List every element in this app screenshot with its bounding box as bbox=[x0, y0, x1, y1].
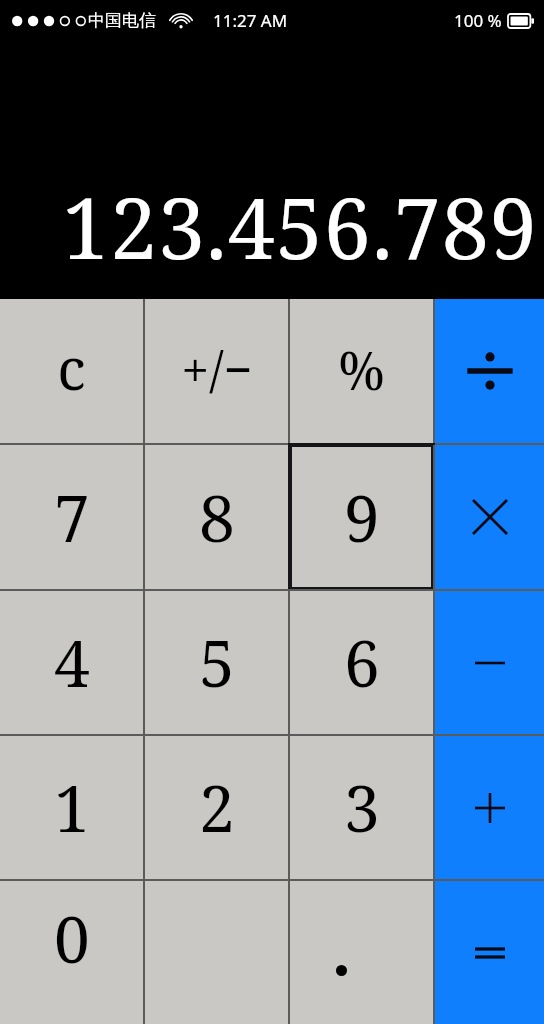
button[interactable]: 6 bbox=[290, 591, 433, 734]
staticText: +/− bbox=[181, 335, 253, 403]
staticText: 2 bbox=[199, 764, 235, 851]
button[interactable]: 7 bbox=[0, 445, 143, 589]
button[interactable]: Add bbox=[435, 736, 544, 879]
button[interactable]: 5 bbox=[145, 591, 288, 734]
staticText: 7 bbox=[54, 474, 90, 561]
button[interactable]: +/− bbox=[145, 299, 288, 443]
button[interactable]: Equals bbox=[435, 881, 544, 1024]
staticText: 123.456.789 bbox=[62, 169, 538, 283]
button[interactable]: % bbox=[290, 299, 433, 443]
staticText: 6 bbox=[344, 619, 380, 706]
staticText: 8 bbox=[199, 474, 235, 561]
button[interactable]: Decimal point bbox=[290, 881, 433, 1024]
button[interactable]: 0 bbox=[0, 881, 143, 1024]
staticText: 100 % bbox=[454, 9, 502, 32]
button[interactable]: 4 bbox=[0, 591, 143, 734]
button[interactable]: 2 bbox=[145, 736, 288, 879]
button[interactable]: Multiply bbox=[435, 445, 544, 589]
button[interactable]: 9 bbox=[290, 445, 433, 589]
staticText: 3 bbox=[344, 764, 380, 851]
staticText: % bbox=[338, 334, 385, 405]
staticText: c bbox=[57, 328, 86, 407]
staticText: 中国电信 bbox=[88, 10, 156, 31]
button[interactable]: Subtract bbox=[435, 591, 544, 734]
staticText: 11:27 AM bbox=[213, 9, 288, 32]
staticText: 1 bbox=[54, 764, 90, 851]
staticText: 0 bbox=[54, 895, 90, 982]
button[interactable]: c bbox=[0, 299, 143, 443]
staticText: 5 bbox=[199, 619, 235, 706]
button[interactable]: 3 bbox=[290, 736, 433, 879]
staticText: 9 bbox=[344, 474, 380, 561]
button[interactable]: Divide bbox=[435, 299, 544, 443]
staticText: 4 bbox=[54, 619, 90, 706]
button[interactable]: 8 bbox=[145, 445, 288, 589]
button[interactable]: 1 bbox=[0, 736, 143, 879]
